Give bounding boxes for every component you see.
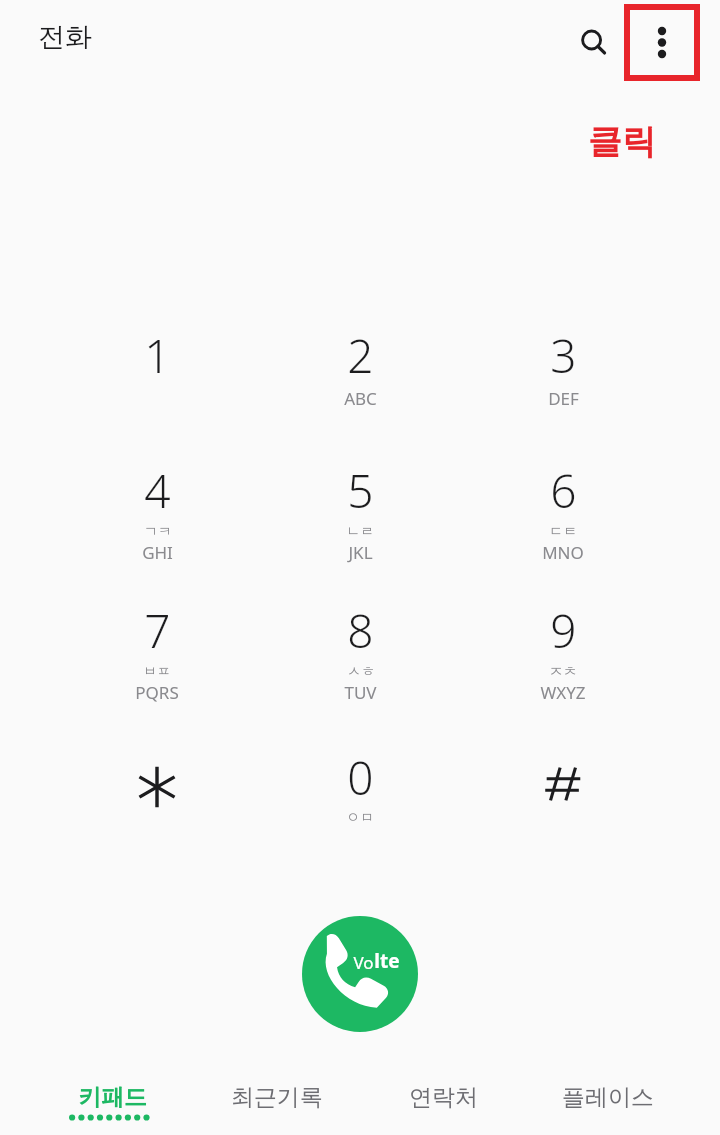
staticText: TUV: [344, 681, 377, 704]
staticText: lte: [374, 948, 400, 974]
button[interactable]: 키패드: [32, 1083, 192, 1135]
staticText: ㄴㄹ: [346, 523, 374, 541]
staticText: 2: [347, 324, 374, 387]
button[interactable]: 연락처: [363, 1083, 523, 1135]
button[interactable]: 더보기: [624, 4, 700, 81]
staticText: 1: [144, 324, 171, 387]
staticText: WXYZ: [540, 681, 586, 704]
button[interactable]: 최근기록: [197, 1083, 357, 1135]
button[interactable]: 4: [82, 459, 232, 591]
staticText: Vo: [353, 951, 374, 974]
staticText: 8: [347, 599, 374, 662]
staticText: DEF: [548, 387, 579, 410]
staticText: GHI: [142, 541, 173, 564]
button[interactable]: 3: [488, 324, 638, 456]
button[interactable]: 0: [285, 746, 435, 878]
staticText: ㅅㅎ: [347, 663, 375, 681]
staticText: 3: [550, 324, 577, 387]
staticText: 5: [347, 459, 374, 522]
staticText: ㅈㅊ: [549, 663, 577, 681]
staticText: ㅂㅍ: [143, 663, 171, 681]
staticText: ㄷㅌ: [549, 523, 577, 541]
button[interactable]: 6: [488, 459, 638, 591]
staticText: ABC: [344, 387, 377, 410]
staticText: 4: [144, 459, 171, 522]
staticText: 6: [550, 459, 577, 522]
staticText: 키패드: [78, 1083, 147, 1112]
staticText: 9: [550, 599, 577, 662]
staticText: ㅇㅁ: [346, 809, 374, 827]
button[interactable]: [82, 746, 232, 878]
staticText: PQRS: [135, 681, 179, 704]
button[interactable]: [488, 746, 638, 878]
button[interactable]: 플레이스: [528, 1083, 688, 1135]
staticText: 플레이스: [562, 1083, 654, 1112]
staticText: JKL: [348, 541, 373, 564]
button[interactable]: 통화: [302, 916, 418, 1032]
staticText: 클릭: [588, 120, 656, 163]
button[interactable]: 9: [488, 599, 638, 731]
button[interactable]: 5: [285, 459, 435, 591]
button[interactable]: 8: [285, 599, 435, 731]
staticText: 7: [144, 599, 171, 662]
button[interactable]: 1: [82, 324, 232, 456]
button[interactable]: 7: [82, 599, 232, 731]
button[interactable]: 검색: [570, 19, 618, 67]
staticText: 0: [347, 746, 374, 809]
staticText: ㄱㅋ: [144, 523, 172, 541]
staticText: 전화: [38, 20, 92, 54]
button[interactable]: 2: [285, 324, 435, 456]
staticText: 최근기록: [231, 1083, 323, 1112]
staticText: 연락처: [409, 1083, 478, 1112]
staticText: MNO: [542, 541, 584, 564]
